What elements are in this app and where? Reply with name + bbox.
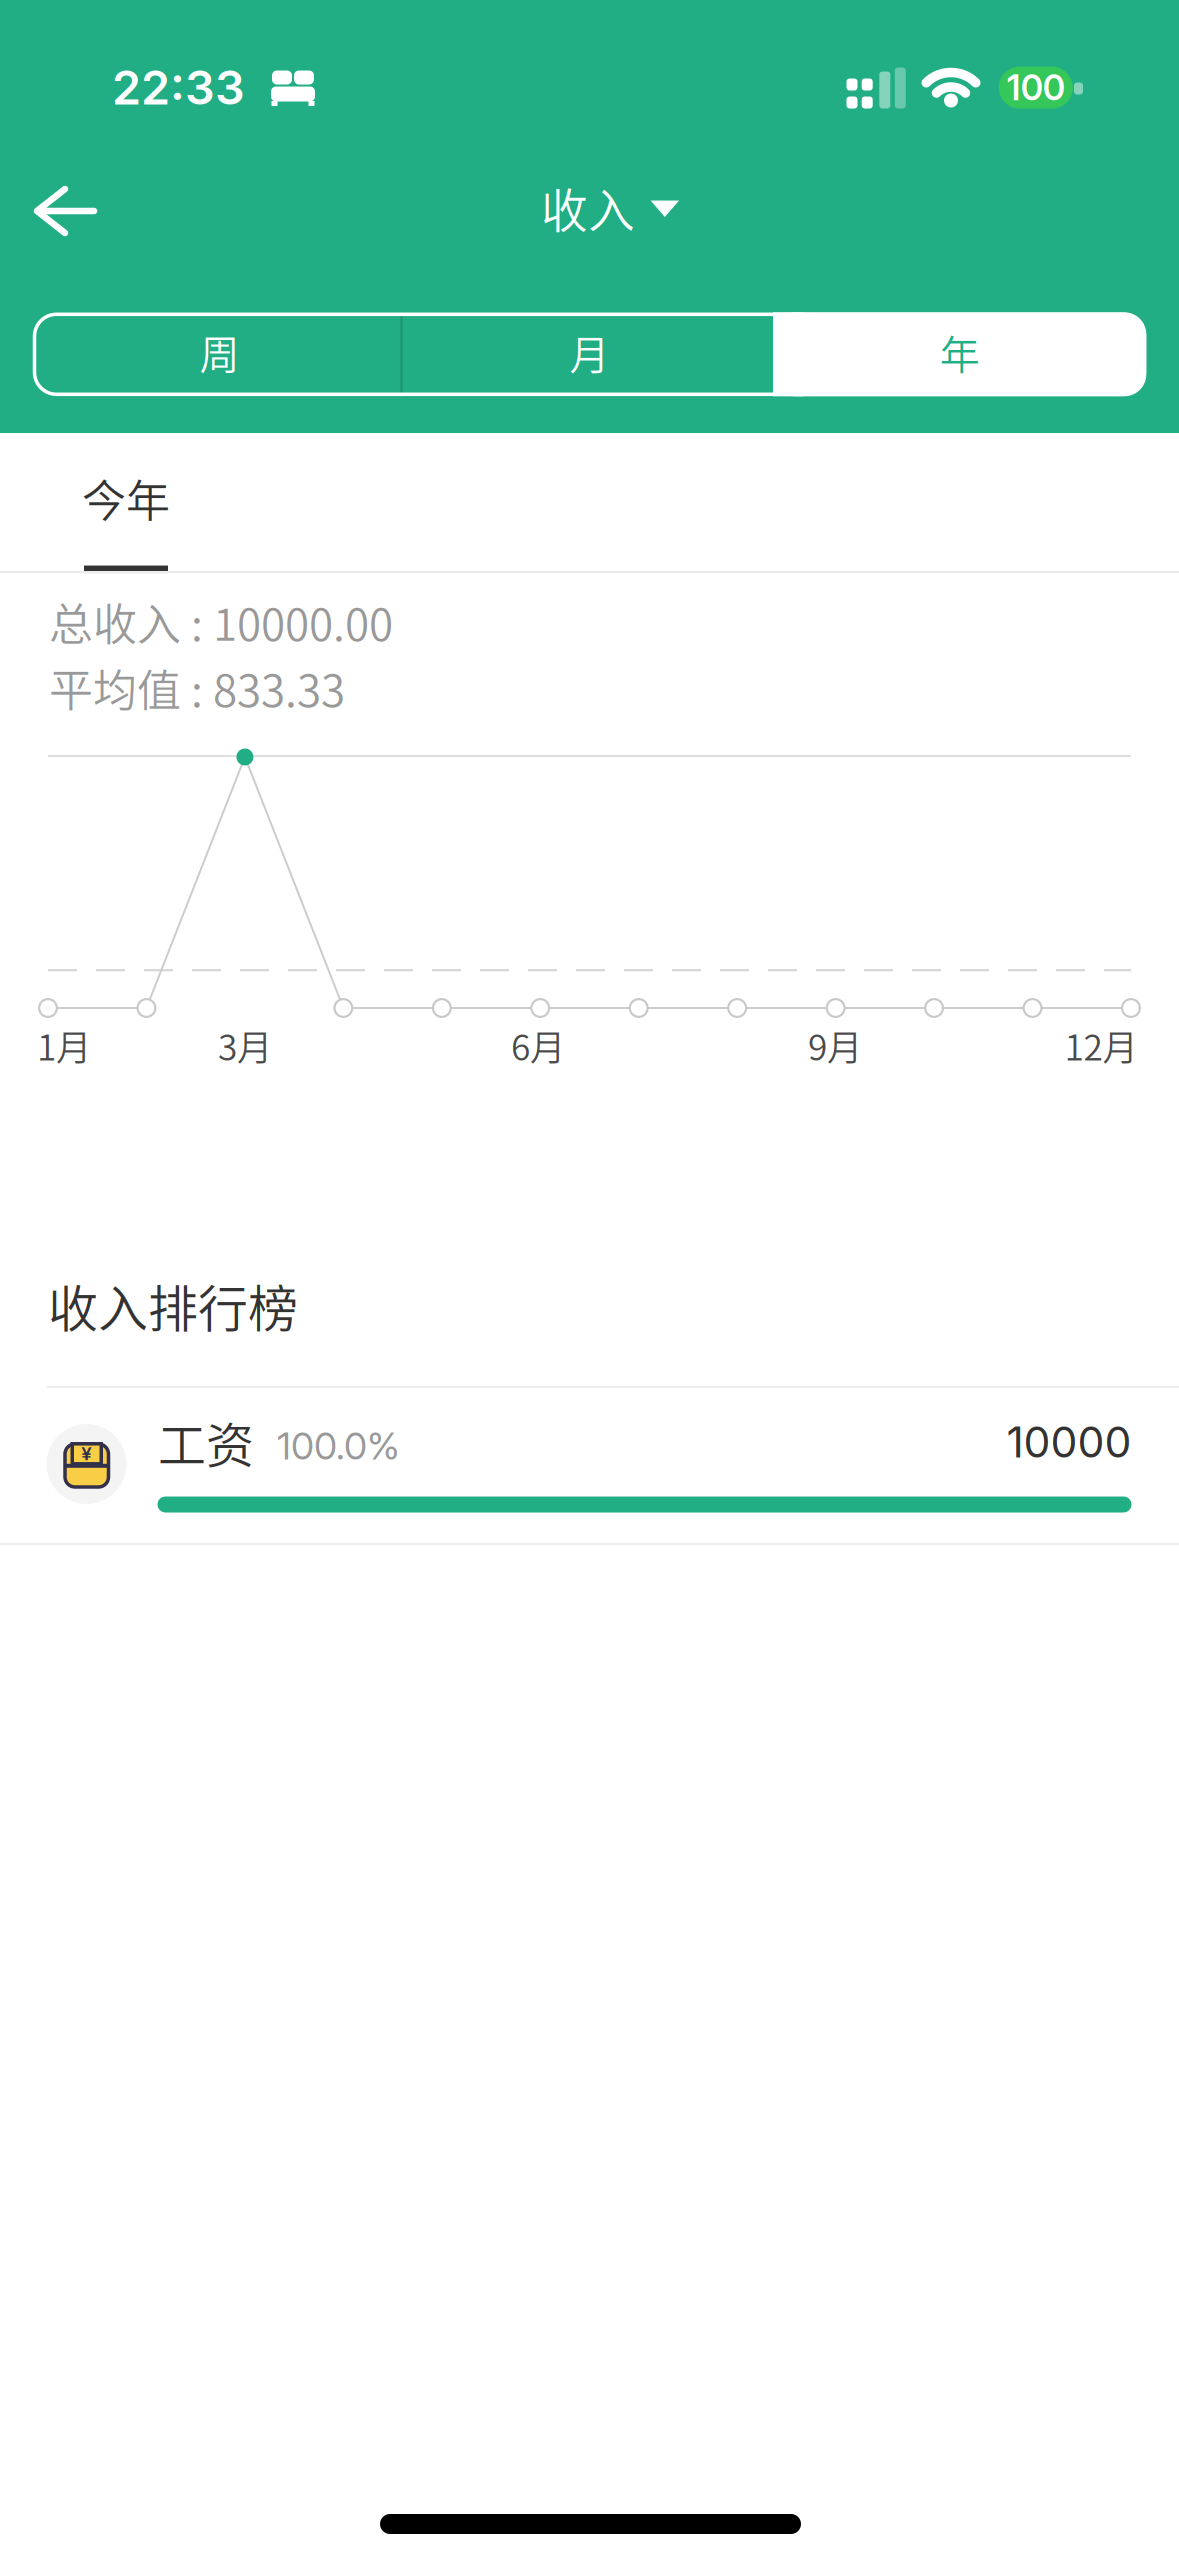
button[interactable]: 收入: [530, 167, 690, 247]
staticText: 收入排行榜: [48, 1269, 298, 1342]
button[interactable]: Back: [25, 176, 105, 246]
staticText: 月: [569, 323, 609, 381]
button[interactable]: 年: [776, 310, 1144, 394]
staticText: 9月: [808, 1019, 862, 1071]
staticText: 总收入 : 10000.00: [49, 590, 393, 653]
staticText: 6月: [511, 1019, 565, 1071]
staticText: 平均值 : 833.33: [49, 656, 345, 719]
staticText: 今年: [82, 466, 170, 530]
staticText: 12月: [1064, 1019, 1137, 1071]
staticText: 100.0%: [277, 1423, 400, 1469]
button[interactable]: 月: [405, 310, 773, 394]
staticText: 工资: [158, 1407, 254, 1477]
staticText: 年: [940, 323, 980, 381]
button[interactable]: 周: [35, 310, 403, 394]
staticText: 3月: [218, 1019, 272, 1071]
staticText: 周: [199, 323, 239, 381]
staticText: 收入: [541, 174, 635, 241]
staticText: 1月: [37, 1019, 91, 1071]
staticText: 100: [1007, 67, 1065, 108]
button[interactable]: ¥: [0, 1387, 1179, 1543]
staticText: 22:33: [112, 59, 245, 116]
staticText: ¥: [81, 1442, 92, 1465]
button[interactable]: 今年: [41, 453, 211, 543]
staticText: 10000: [1006, 1416, 1131, 1468]
